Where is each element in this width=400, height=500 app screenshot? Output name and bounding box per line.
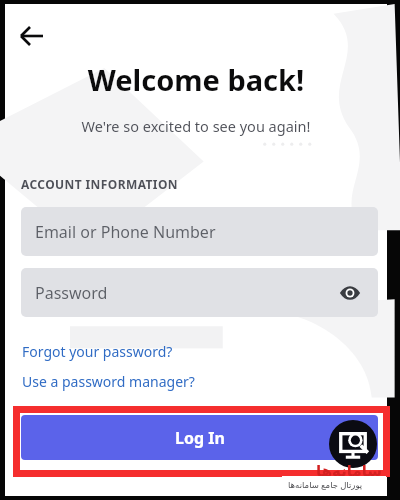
button[interactable]: Show password — [336, 279, 364, 307]
staticText: We're so excited to see you again! — [5, 116, 387, 136]
button[interactable]: Log In — [21, 415, 378, 460]
button[interactable]: Use a password manager? — [21, 369, 196, 394]
staticText: Email or Phone Number — [35, 221, 216, 243]
staticText: پورتال جامع سامانه‌ها — [288, 479, 363, 491]
staticText: Welcome back! — [5, 60, 387, 99]
staticText: ACCOUNT INFORMATION — [21, 176, 178, 192]
button[interactable]: Password — [21, 268, 378, 317]
button[interactable]: Back — [13, 14, 57, 58]
staticText: سامانه‌ها — [316, 462, 383, 479]
button[interactable]: Email or Phone Number — [21, 207, 378, 256]
staticText: Log In — [175, 427, 225, 449]
button[interactable]: Forgot your password? — [21, 339, 174, 364]
staticText: Use a password manager? — [22, 372, 195, 391]
staticText: Forgot your password? — [22, 342, 173, 361]
staticText: Password — [35, 282, 108, 304]
